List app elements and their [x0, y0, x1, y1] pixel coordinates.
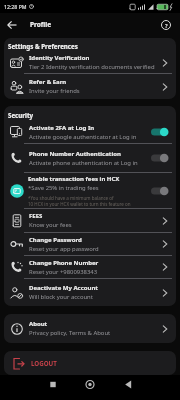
staticText: Change Password — [29, 236, 82, 244]
staticText: Security — [8, 111, 34, 119]
staticText: Reset your +9800938343 — [29, 268, 98, 276]
staticText: Settings & Preferences — [8, 42, 78, 50]
staticText: Activate google authenticator at Log in — [29, 133, 137, 141]
button[interactable]: About — [4, 314, 176, 343]
staticText: 10 HCX in your HCX wallet to turn this f… — [28, 201, 131, 207]
staticText: Tier 2 Identity verification documents v… — [29, 63, 155, 71]
staticText: *You should have a minimum balance of — [28, 195, 114, 201]
staticText: Reset your app password — [29, 245, 99, 253]
button[interactable]: Phone Number Authentication — [4, 144, 176, 172]
staticText: Identity Verification — [29, 54, 90, 62]
staticText: Change Phone Number — [29, 259, 99, 267]
button[interactable]: ? — [161, 20, 171, 30]
staticText: LOGOUT — [31, 359, 57, 367]
button[interactable]: FEES — [4, 209, 176, 232]
button[interactable]: Deactivate My Account — [4, 279, 176, 306]
staticText: Enable transaction fees in HCX — [28, 175, 120, 183]
staticText: ? — [165, 22, 168, 29]
button[interactable] — [80, 375, 100, 395]
button[interactable] — [118, 375, 138, 395]
staticText: About — [29, 320, 48, 328]
staticText: Know your fees — [29, 221, 72, 229]
button[interactable]: Change Phone Number — [4, 256, 176, 278]
button[interactable]: LOGOUT — [4, 351, 176, 375]
staticText: Invite your friends — [29, 87, 80, 95]
button[interactable]: Identity Verification — [4, 52, 176, 73]
button[interactable]: Change Password — [4, 233, 176, 255]
staticText: Activate phone authentication at Log in — [29, 159, 138, 167]
button[interactable] — [43, 375, 63, 395]
button[interactable]: Enable transaction fees in HCX — [4, 173, 176, 208]
button[interactable]: Activate 2FA at Log In — [4, 121, 176, 143]
staticText: FEES — [29, 212, 43, 220]
staticText: Privacy policy, Terms & About — [29, 329, 111, 337]
staticText: Profile — [30, 20, 52, 29]
staticText: Activate 2FA at Log In — [29, 124, 95, 132]
button[interactable]: Refer & Earn — [4, 74, 176, 99]
staticText: Phone Number Authentication — [29, 150, 121, 158]
staticText: Refer & Earn — [29, 78, 67, 86]
button[interactable] — [7, 20, 17, 30]
staticText: *Save 25% in trading fees — [28, 184, 99, 192]
staticText: Will block your account — [29, 293, 93, 301]
staticText: 12:28 PM — [4, 3, 27, 10]
staticText: Deactivate My Account — [29, 284, 98, 292]
